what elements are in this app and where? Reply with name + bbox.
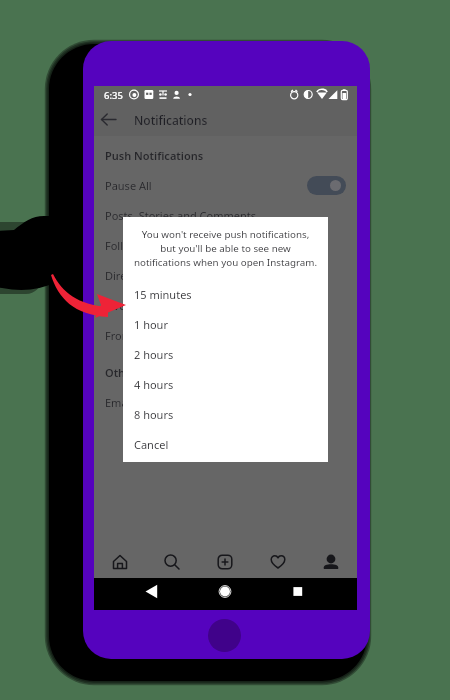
button[interactable]: 8 hours	[123, 399, 328, 429]
button[interactable]: Cancel	[123, 429, 328, 459]
staticText: Pause All	[105, 178, 152, 193]
staticText: 2 hours	[134, 347, 174, 362]
staticText: 4 hours	[134, 377, 174, 392]
button[interactable]: Following and Followers	[94, 230, 357, 260]
staticText: From Instagram	[105, 328, 189, 343]
button[interactable]: 2 hours	[123, 339, 328, 369]
button[interactable]: 1 hour	[123, 309, 328, 339]
button[interactable]: Live and IGTV	[94, 290, 357, 320]
staticText: Other Notification Types	[105, 365, 237, 380]
staticText: 8 hours	[134, 407, 174, 422]
staticText: Live and IGTV	[105, 298, 176, 313]
button[interactable]: Home	[94, 553, 146, 571]
staticText: Push Notifications	[105, 148, 204, 163]
button[interactable]: Search	[146, 553, 198, 571]
staticText: Posts, Stories and Comments	[105, 208, 257, 223]
button[interactable]: Back	[95, 106, 123, 134]
staticText: You won't receive push notifications, bu…	[123, 228, 328, 269]
staticText: 15 minutes	[134, 287, 192, 302]
staticText: 6:35	[104, 89, 123, 102]
button[interactable]: Profile	[304, 553, 357, 571]
staticText: Notifications	[134, 112, 208, 128]
staticText: Following and Followers	[105, 238, 230, 253]
staticText: Cancel	[134, 437, 169, 452]
button[interactable]: 4 hours	[123, 369, 328, 399]
button[interactable]: Create	[198, 553, 251, 571]
button[interactable]: From Instagram	[94, 320, 357, 350]
staticText: 1 hour	[134, 317, 168, 332]
button[interactable]: Posts, Stories and Comments	[94, 200, 357, 230]
button[interactable]: Push Notifications	[94, 140, 357, 170]
staticText: Email and SMS Messages	[105, 395, 235, 410]
button[interactable]: Email and SMS Messages	[94, 387, 357, 417]
button[interactable]: 15 minutes	[123, 279, 328, 309]
button[interactable]: Direct Messages and Calls	[94, 260, 357, 290]
button[interactable]: Pause All	[94, 170, 357, 200]
button[interactable]: Other Notification Types	[94, 357, 357, 387]
staticText: Direct Messages and Calls	[105, 268, 240, 283]
button[interactable]: Activity	[251, 553, 304, 571]
